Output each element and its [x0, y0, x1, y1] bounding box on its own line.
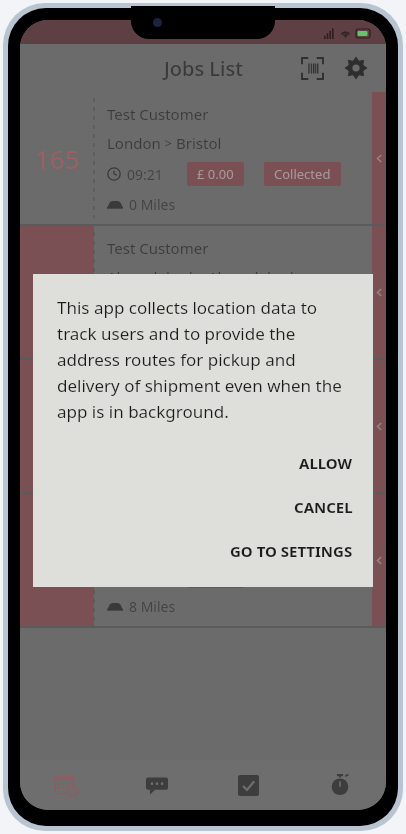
button[interactable]: GO TO SETTINGS [57, 529, 353, 573]
staticText: 8 Miles [129, 597, 176, 616]
staticText: Bristol [176, 133, 222, 153]
staticText: ALLOW [299, 453, 353, 473]
button[interactable]: Timer [294, 760, 386, 810]
staticText: 09:21 [127, 165, 163, 184]
button[interactable]: ALLOW [57, 441, 353, 485]
staticText: Test Customer [107, 372, 209, 392]
staticText: > [224, 536, 239, 554]
button[interactable]: CANCEL [57, 485, 353, 529]
staticText: 10:10 [127, 299, 163, 318]
staticText: Ahmedabad [239, 535, 325, 555]
staticText: Collected [274, 165, 331, 183]
button[interactable]: 165 [20, 92, 386, 224]
button[interactable]: 2 [20, 360, 386, 492]
staticText: GO TO SETTINGS [230, 541, 353, 561]
staticText: Test Customer [107, 104, 209, 124]
staticText: 8 Miles [129, 329, 176, 348]
staticText: 2 [50, 275, 65, 310]
button[interactable]: 231 [20, 494, 386, 626]
staticText: 165 [35, 141, 80, 176]
staticText: London [107, 133, 161, 153]
staticText: 0 Miles [129, 195, 176, 214]
staticText: £ 3.00 [197, 299, 234, 317]
staticText: Jobs List [164, 55, 243, 82]
button[interactable]: Messages [111, 760, 202, 810]
button[interactable]: 2 [20, 226, 386, 358]
staticText: Ahmedabad [107, 267, 193, 287]
button[interactable]: Tasks [202, 760, 294, 810]
staticText: > [193, 402, 208, 420]
staticText: Test Customer [107, 238, 209, 258]
staticText: CANCEL [294, 497, 353, 517]
button[interactable]: Scan barcode [290, 46, 334, 90]
staticText: > [193, 268, 208, 286]
staticText: This app collects location data to track… [57, 296, 353, 423]
button[interactable]: Jobs [20, 760, 111, 810]
staticText: Ahmedabad [208, 267, 294, 287]
staticText: Ahmedabad [208, 401, 294, 421]
staticText: > [161, 134, 176, 152]
staticText: 2 [50, 409, 65, 444]
staticText: Ahmedabad [107, 401, 193, 421]
button[interactable]: Settings [334, 46, 378, 90]
staticText: £ 0.00 [197, 165, 234, 183]
